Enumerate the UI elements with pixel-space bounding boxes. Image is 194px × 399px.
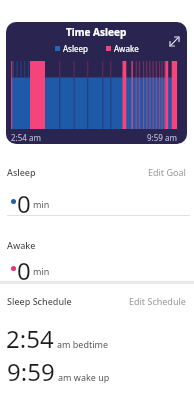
staticText: 2:54 bbox=[6, 322, 54, 355]
button[interactable]: Edit Goal bbox=[148, 166, 186, 178]
staticText: Asleep bbox=[63, 43, 88, 54]
button[interactable]: 2:54 bbox=[6, 322, 109, 355]
staticText: 0 bbox=[17, 187, 31, 220]
staticText: Time Asleep bbox=[66, 25, 127, 39]
staticText: Asleep bbox=[7, 166, 36, 178]
staticText: 9:59 bbox=[7, 355, 55, 388]
staticText: 0 bbox=[17, 254, 31, 287]
staticText: Awake bbox=[7, 239, 36, 251]
button[interactable]: Time Asleep bbox=[6, 22, 187, 144]
staticText: min bbox=[33, 265, 50, 277]
staticText: min bbox=[33, 198, 50, 210]
staticText: Sleep Schedule bbox=[7, 295, 72, 307]
staticText: 2:54 am bbox=[11, 132, 41, 143]
staticText: am bedtime bbox=[57, 338, 109, 350]
staticText: 9:59 am bbox=[147, 132, 177, 143]
button[interactable]: Edit Schedule bbox=[129, 295, 186, 307]
staticText: Awake bbox=[114, 43, 139, 54]
button[interactable]: 9:59 bbox=[7, 355, 110, 388]
staticText: am wake up bbox=[58, 371, 110, 383]
